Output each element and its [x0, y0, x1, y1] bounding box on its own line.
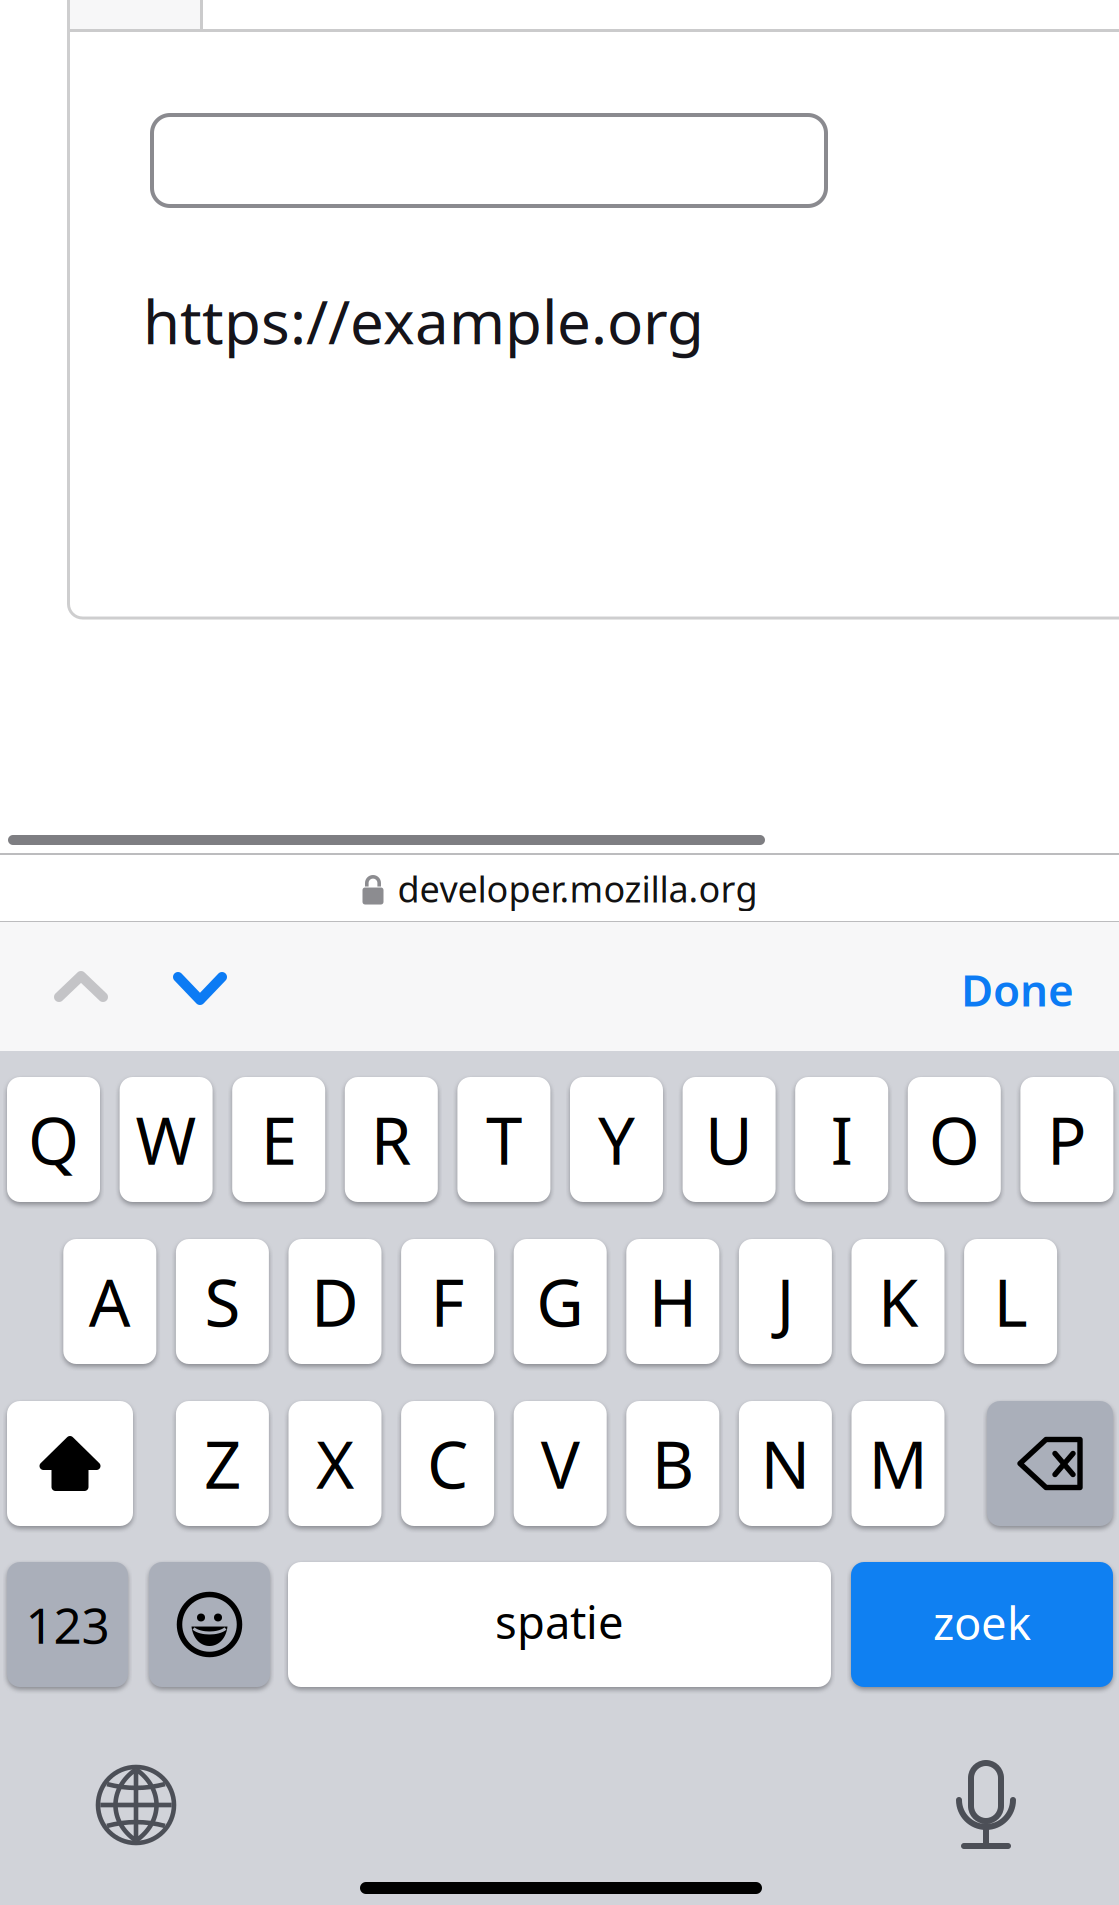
- staticText: zoek: [933, 1592, 1031, 1653]
- button[interactable]: Q: [7, 1077, 100, 1202]
- button[interactable]: I: [795, 1077, 888, 1202]
- button[interactable]: [987, 1401, 1113, 1526]
- staticText: Done: [961, 960, 1074, 1019]
- button[interactable]: Z: [176, 1401, 269, 1526]
- staticText: U: [705, 1096, 753, 1183]
- button[interactable]: [7, 1401, 133, 1526]
- staticText: E: [261, 1096, 297, 1183]
- button[interactable]: spatie: [288, 1562, 831, 1687]
- staticText: G: [536, 1258, 584, 1345]
- staticText: O: [929, 1096, 980, 1183]
- button[interactable]: Y: [570, 1077, 663, 1202]
- button[interactable]: A: [63, 1239, 156, 1364]
- staticText: J: [776, 1258, 794, 1345]
- button[interactable]: R: [345, 1077, 438, 1202]
- staticText: developer.mozilla.org: [397, 865, 757, 912]
- button[interactable]: H: [626, 1239, 719, 1364]
- button[interactable]: V: [514, 1401, 607, 1526]
- button[interactable]: developer.mozilla.org: [361, 855, 757, 922]
- staticText: 123: [25, 1592, 109, 1657]
- staticText: Y: [598, 1096, 635, 1183]
- staticText: B: [652, 1420, 694, 1507]
- button[interactable]: M: [851, 1401, 944, 1526]
- button[interactable]: D: [288, 1239, 381, 1364]
- button[interactable]: Done: [914, 925, 1074, 1054]
- button[interactable]: C: [401, 1401, 494, 1526]
- staticText: S: [204, 1258, 240, 1345]
- button[interactable]: E: [232, 1077, 325, 1202]
- button[interactable]: L: [964, 1239, 1057, 1364]
- staticText: A: [89, 1258, 131, 1345]
- button[interactable]: J: [739, 1239, 832, 1364]
- staticText: V: [541, 1420, 580, 1507]
- button[interactable]: K: [851, 1239, 944, 1364]
- button[interactable]: Next field: [144, 924, 256, 1053]
- button[interactable]: T: [457, 1077, 550, 1202]
- button[interactable]: G: [514, 1239, 607, 1364]
- button[interactable]: S: [176, 1239, 269, 1364]
- staticText: D: [311, 1258, 359, 1345]
- staticText: R: [371, 1096, 412, 1183]
- staticText: P: [1047, 1096, 1087, 1183]
- button[interactable]: X: [288, 1401, 381, 1526]
- staticText: N: [760, 1420, 810, 1507]
- button[interactable]: P: [1020, 1077, 1113, 1202]
- staticText: W: [136, 1096, 197, 1183]
- staticText: L: [994, 1258, 1028, 1345]
- staticText: X: [316, 1420, 354, 1507]
- button[interactable]: [149, 1562, 270, 1687]
- button[interactable]: U: [683, 1077, 776, 1202]
- staticText: spatie: [495, 1591, 624, 1652]
- staticText: H: [649, 1258, 697, 1345]
- staticText: M: [868, 1420, 927, 1507]
- staticText: F: [431, 1258, 465, 1345]
- staticText: https://example.org: [143, 281, 704, 361]
- button[interactable]: W: [120, 1077, 213, 1202]
- staticText: T: [486, 1096, 522, 1183]
- button[interactable]: B: [626, 1401, 719, 1526]
- button[interactable]: O: [908, 1077, 1001, 1202]
- staticText: I: [831, 1096, 853, 1183]
- button[interactable]: Next keyboard: [98, 1767, 174, 1843]
- staticText: C: [427, 1420, 468, 1507]
- staticText: K: [878, 1258, 918, 1345]
- staticText: Z: [204, 1420, 241, 1507]
- button[interactable]: Dictation: [955, 1759, 1017, 1851]
- button[interactable]: N: [739, 1401, 832, 1526]
- button[interactable]: Previous field: [25, 922, 137, 1051]
- button[interactable]: zoek: [851, 1562, 1113, 1687]
- button[interactable]: F: [401, 1239, 494, 1364]
- staticText: Q: [28, 1096, 79, 1183]
- button[interactable]: 123: [7, 1562, 128, 1687]
